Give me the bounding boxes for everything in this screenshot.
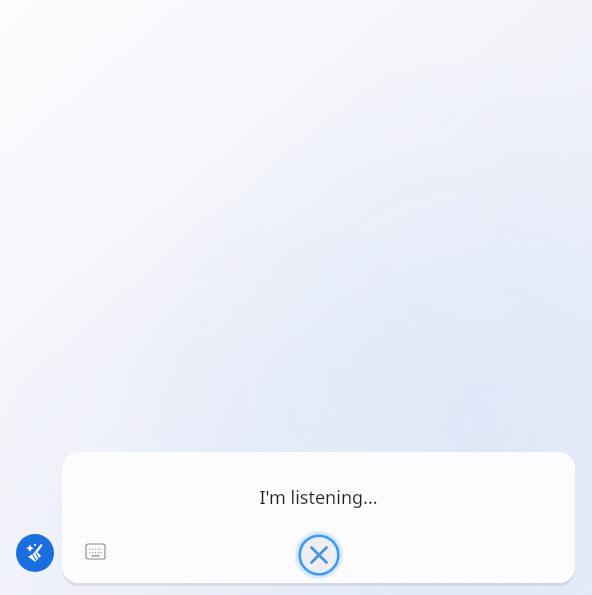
staticText: I'm listening... <box>259 485 378 510</box>
button[interactable]: Stop listening <box>294 530 344 580</box>
button[interactable]: Use keyboard <box>76 532 114 570</box>
button[interactable]: Clean up <box>16 534 54 572</box>
